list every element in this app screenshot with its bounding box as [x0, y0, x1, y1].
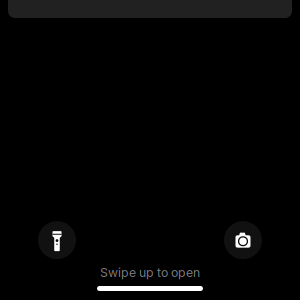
staticText: Swipe up to open: [100, 265, 200, 280]
button[interactable]: Flashlight: [38, 221, 76, 259]
button[interactable]: Camera: [224, 221, 262, 259]
